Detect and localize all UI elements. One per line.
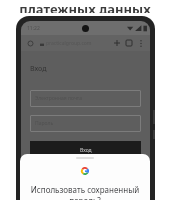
staticText: Электронная почта: [35, 95, 82, 102]
button[interactable]: Вход: [30, 141, 141, 160]
button[interactable]: Электронная почта: [30, 90, 141, 107]
staticText: платежных данных: [19, 0, 151, 13]
button[interactable]: More options: [136, 39, 145, 48]
button[interactable]: Reload: [26, 39, 35, 48]
staticText: Вход: [80, 147, 92, 154]
staticText: Вход: [30, 64, 47, 74]
button[interactable]: practicalgroup.com: [40, 40, 112, 47]
staticText: Использовать сохраненный пароль?: [20, 184, 150, 200]
button[interactable]: Tabs: [124, 38, 134, 48]
staticText: 11:22: [27, 25, 40, 32]
staticText: Пароль: [35, 120, 54, 127]
button[interactable]: New tab: [112, 38, 122, 48]
button[interactable]: Пароль: [30, 115, 141, 132]
